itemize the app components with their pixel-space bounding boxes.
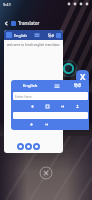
button[interactable]: Speak <box>60 104 65 109</box>
button[interactable]: English <box>11 80 49 92</box>
staticText: welcome to hindi english translator <box>7 43 60 47</box>
button[interactable]: Swap languages <box>49 80 65 92</box>
button[interactable]: Share <box>75 104 80 109</box>
staticText: English <box>14 33 27 38</box>
button[interactable]: Action <box>17 143 24 150</box>
button[interactable]: Back <box>2 19 10 27</box>
button[interactable]: Dismiss <box>39 166 53 180</box>
button[interactable]: Record <box>29 122 34 127</box>
button[interactable]: Action <box>25 143 32 150</box>
button[interactable]: Close <box>76 70 89 83</box>
button[interactable] <box>13 112 88 119</box>
staticText: X <box>80 71 86 82</box>
staticText: हिंदी <box>48 33 54 38</box>
button[interactable]: Record <box>30 104 35 109</box>
button[interactable]: Action <box>33 143 40 150</box>
staticText: 9:41 <box>3 2 11 7</box>
staticText: English <box>23 83 38 89</box>
button[interactable]: हिंदी <box>65 80 89 92</box>
button[interactable]: Copy <box>45 104 50 109</box>
staticText: Translator <box>18 20 40 26</box>
button[interactable]: Speak <box>44 122 49 127</box>
staticText: हिंदी <box>74 83 81 89</box>
staticText: Enter here <box>15 94 32 99</box>
button[interactable]: Enter here <box>13 92 88 100</box>
